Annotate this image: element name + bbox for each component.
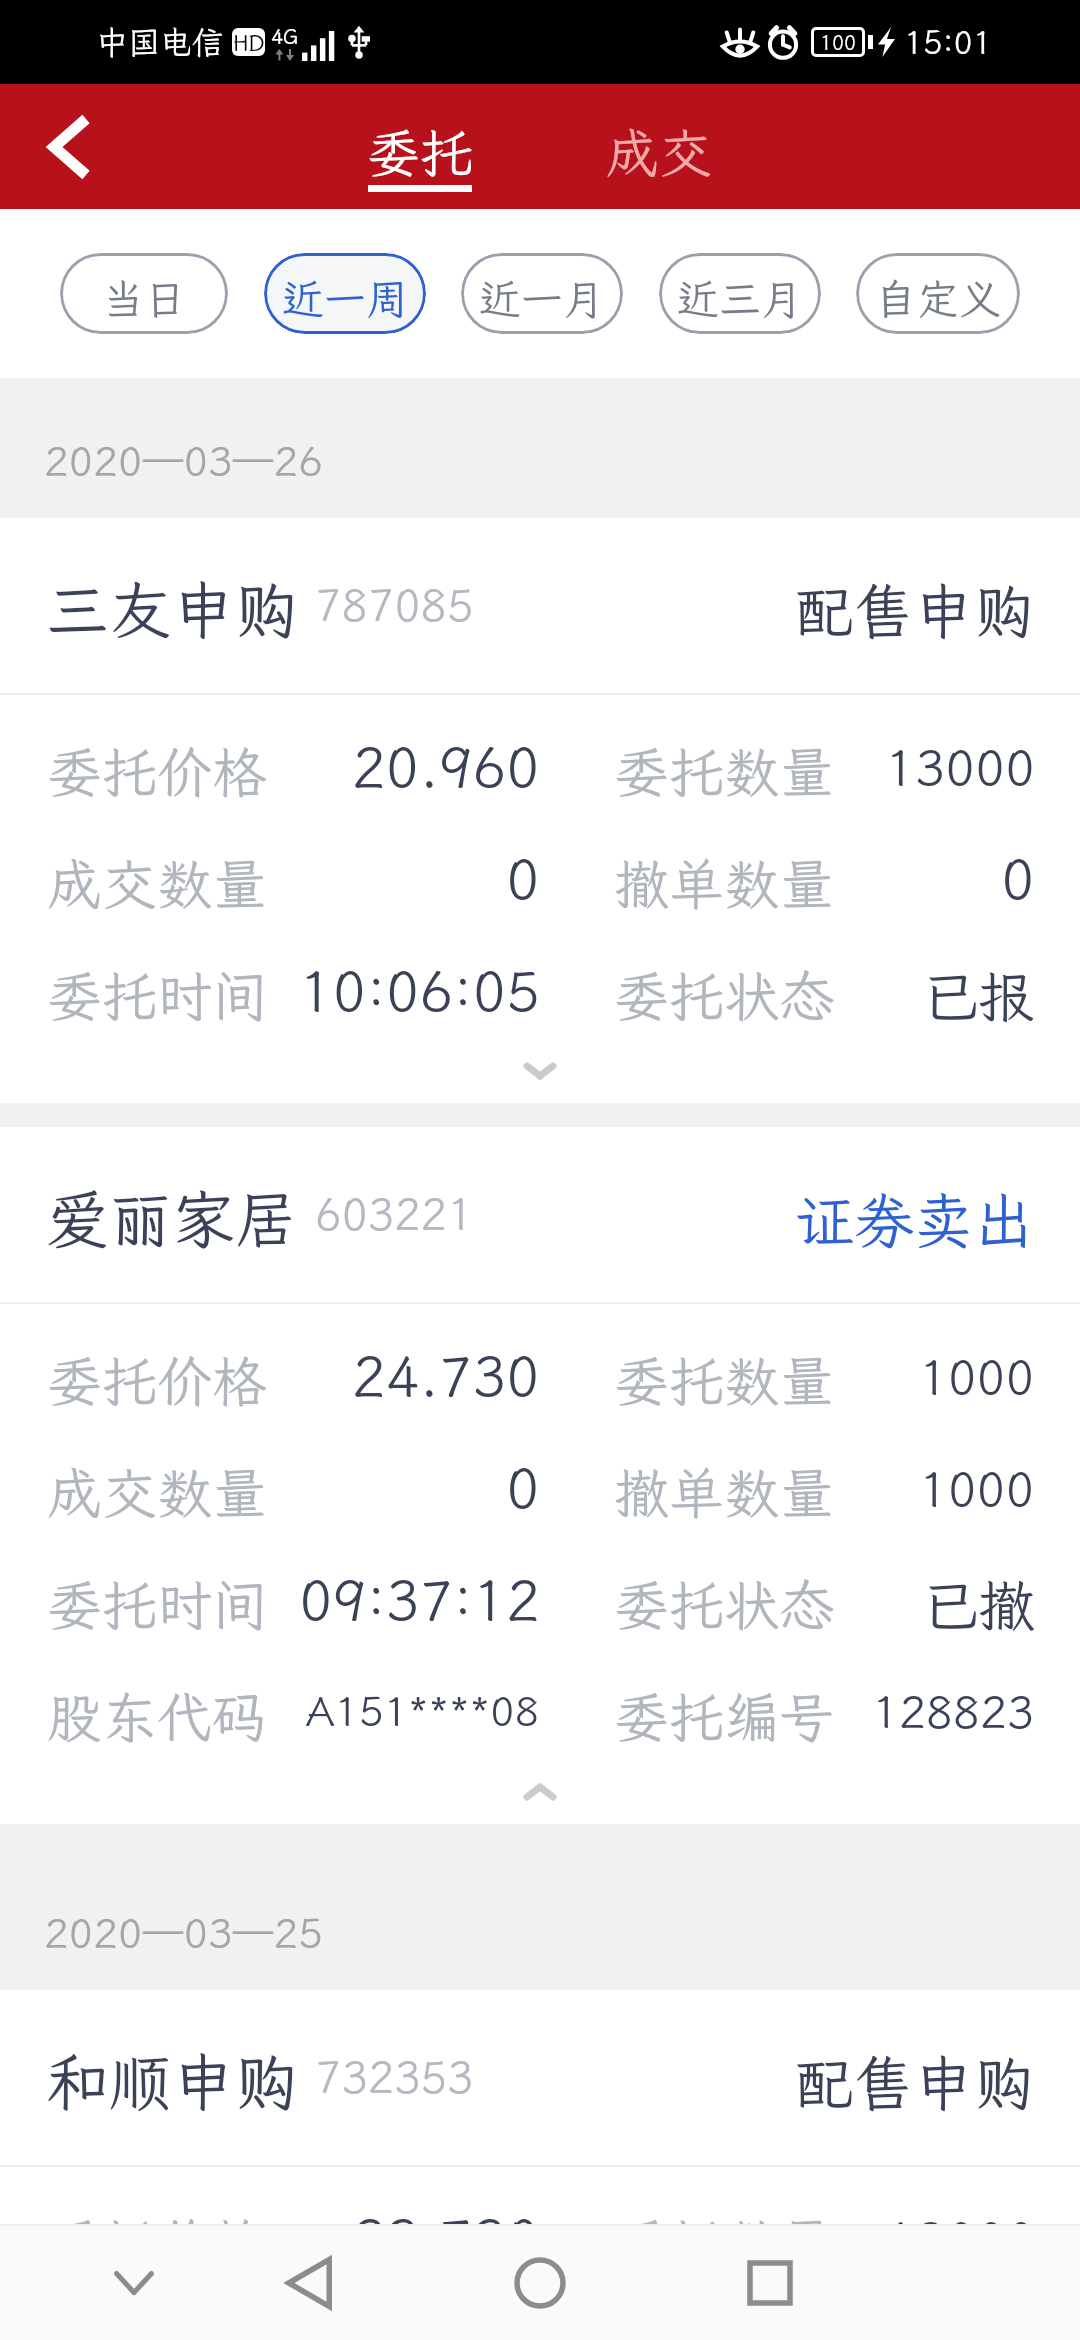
staticText: 配售申购 (794, 571, 1034, 650)
staticText: 委托时间 (47, 959, 268, 1031)
staticText: 15:01 (904, 21, 993, 63)
staticText: 委托价格 (47, 2207, 268, 2224)
staticText: 0 (506, 841, 540, 915)
staticText: 近三月 (677, 271, 804, 326)
staticText: 爱丽家居 (46, 1177, 298, 1260)
staticText: 委托数量 (614, 735, 835, 807)
staticText: 证券卖出 (794, 1180, 1034, 1259)
staticText: 787085 (315, 576, 474, 634)
staticText: 603221 (315, 1185, 474, 1243)
staticText: 09:37:12 (299, 1562, 540, 1636)
staticText: 10:06:05 (299, 953, 540, 1027)
staticText: 委托 (367, 117, 473, 187)
button[interactable]: Home (484, 2226, 596, 2340)
staticText: 1000 (919, 1456, 1035, 1519)
staticText: 中国电信 (96, 21, 225, 63)
button[interactable]: 委托 (340, 84, 500, 209)
staticText: 当日 (102, 271, 187, 326)
button[interactable]: Back (0, 84, 140, 209)
staticText: 0 (506, 1450, 540, 1524)
staticText: 撤单数量 (614, 847, 835, 919)
staticText: 成交数量 (47, 1456, 268, 1528)
staticText: 委托价格 (47, 1344, 268, 1416)
button[interactable]: 三友申购 (0, 518, 1080, 1103)
button[interactable]: 和顺申购 (0, 1990, 1080, 2224)
button[interactable]: 近三月 (659, 253, 821, 334)
staticText: 委托状态 (614, 1568, 835, 1640)
staticText: 撤单数量 (614, 1456, 835, 1528)
staticText: 近一周 (282, 271, 409, 326)
staticText: 股东代码 (47, 1680, 268, 1752)
button[interactable]: Hide keyboard (78, 2226, 190, 2340)
staticText: 2020—03—26 (44, 434, 323, 488)
button[interactable]: 近一周 (264, 253, 426, 334)
staticText: 4G (271, 23, 299, 49)
staticText: 已报 (921, 958, 1035, 1033)
button[interactable]: 成交 (579, 84, 739, 209)
staticText: 配售申购 (794, 2043, 1034, 2122)
staticText: 732353 (315, 2048, 474, 2106)
staticText: A151****08 (306, 1684, 540, 1738)
staticText: 和顺申购 (46, 2040, 298, 2123)
staticText: 13000 (885, 733, 1035, 799)
staticText: 2020—03—25 (44, 1906, 323, 1960)
staticText: 100 (820, 29, 856, 55)
staticText: 委托编号 (614, 1680, 835, 1752)
staticText: 委托时间 (47, 1568, 268, 1640)
button[interactable]: Recents (714, 2226, 826, 2340)
staticText: 自定义 (875, 271, 1002, 326)
staticText: 委托价格 (47, 735, 268, 807)
staticText: 20.960 (352, 729, 540, 803)
staticText: 三友申购 (46, 568, 298, 651)
staticText: 128823 (872, 1682, 1035, 1741)
button[interactable]: 当日 (60, 253, 228, 334)
staticText: 委托状态 (614, 959, 835, 1031)
staticText: HD (233, 28, 265, 56)
staticText: 近一月 (479, 271, 606, 326)
staticText: 1000 (919, 1344, 1035, 1407)
staticText: 23.730 (352, 2201, 540, 2224)
staticText: 已撤 (921, 1567, 1035, 1642)
button[interactable]: 爱丽家居 (0, 1127, 1080, 1824)
staticText: 成交数量 (47, 847, 268, 919)
staticText: 成交 (606, 117, 712, 187)
button[interactable]: 自定义 (856, 253, 1020, 334)
staticText: 委托数量 (614, 1344, 835, 1416)
button[interactable]: 近一月 (461, 253, 623, 334)
staticText: 委托数量 (614, 2207, 835, 2224)
staticText: 24.730 (352, 1338, 540, 1412)
staticText: 0 (1001, 841, 1035, 915)
staticText: 13000 (885, 2205, 1035, 2224)
button[interactable]: Back (253, 2226, 365, 2340)
